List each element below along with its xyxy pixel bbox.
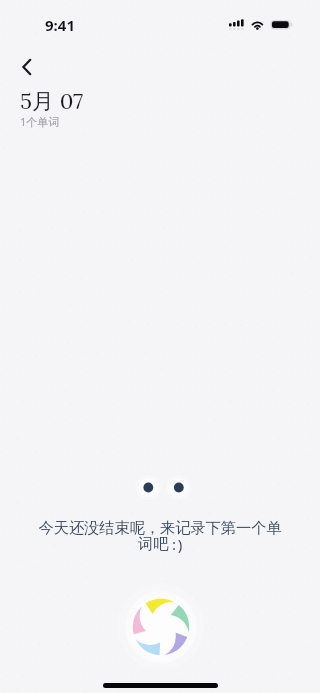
staticText: 9:41 xyxy=(45,15,75,35)
staticText: :) xyxy=(172,534,185,555)
staticText: 今天还没结束呢，来记录下第一个单 xyxy=(35,518,285,537)
staticText: 5月 07 xyxy=(20,87,84,116)
staticText: 1个单词 xyxy=(20,114,60,129)
button[interactable]: Back xyxy=(6,46,48,88)
staticText: 词吧 xyxy=(138,534,169,553)
